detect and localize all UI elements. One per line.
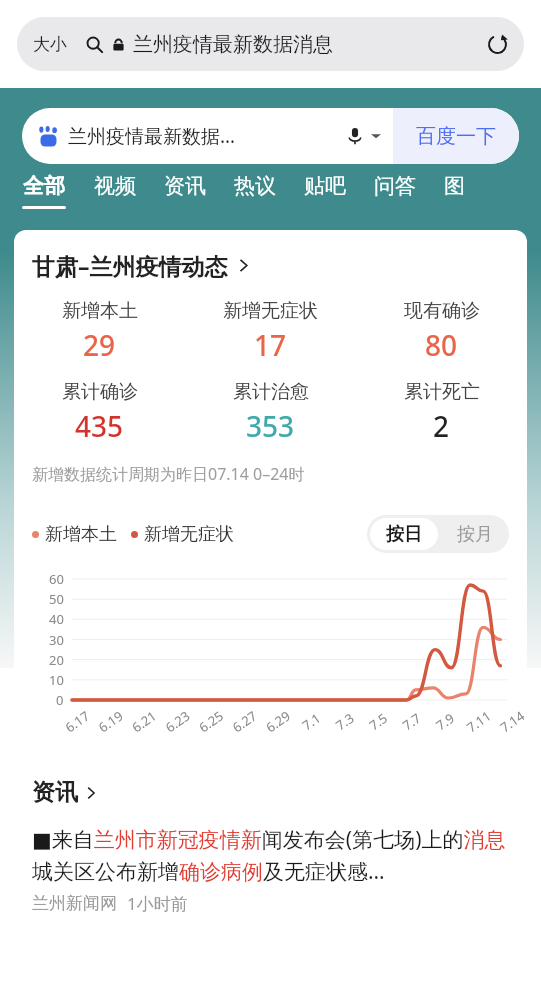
other: Secure (111, 37, 126, 52)
staticText: 甘肃–兰州疫情动态 (32, 250, 228, 281)
button[interactable]: 现有确诊 (356, 299, 527, 364)
button[interactable]: 资讯 (150, 164, 220, 220)
button[interactable]: 累计死亡 (356, 380, 527, 445)
staticText: 累计确诊 (62, 380, 138, 404)
staticText: 80 (425, 326, 458, 364)
button[interactable]: 贴吧 (290, 164, 360, 220)
button[interactable]: 按月 (441, 515, 509, 553)
staticText: 贴吧 (304, 173, 346, 199)
button[interactable]: 新增无症状 (185, 299, 356, 364)
staticText: 兰州疫情最新数据消息 (133, 32, 333, 57)
staticText: 新增数据统计周期为昨日07.14 0–24时 (32, 463, 305, 485)
button[interactable]: 累计确诊 (14, 380, 185, 445)
staticText: 新增本土 (62, 299, 138, 323)
button[interactable]: 百度一下 (393, 108, 519, 164)
staticText: 现有确诊 (404, 299, 480, 323)
staticText: 17 (254, 326, 287, 364)
staticText: 2 (433, 407, 450, 445)
staticText: 累计治愈 (233, 380, 309, 404)
other: Reload (487, 34, 508, 55)
staticText: ■来自兰州市新冠疫情新闻发布会(第七场)上的消息 城关区公布新增确诊病例及无症状… (32, 825, 509, 886)
button[interactable]: 视频 (80, 164, 150, 220)
staticText: 百度一下 (416, 124, 496, 149)
staticText: 435 (75, 407, 124, 445)
other: Voice search (346, 127, 364, 145)
staticText: 按月 (457, 523, 493, 546)
button[interactable]: 累计治愈 (185, 380, 356, 445)
other: Search (86, 36, 103, 53)
staticText: 图 (444, 173, 465, 199)
button[interactable]: 兰州疫情最新数据… (22, 108, 519, 164)
staticText: 新增无症状 (144, 523, 234, 546)
button[interactable]: 热议 (220, 164, 290, 220)
staticText: 新增本土 (45, 523, 117, 546)
button[interactable]: 按日 (370, 518, 438, 550)
button[interactable]: 全部 (22, 164, 66, 220)
staticText: 353 (246, 407, 295, 445)
staticText: 资讯 (32, 778, 78, 807)
staticText: 兰州新闻网 (32, 893, 117, 914)
staticText: 新增无症状 (223, 299, 318, 323)
staticText: 29 (83, 326, 116, 364)
staticText: 兰州疫情最新数据… (68, 123, 236, 149)
staticText: 热议 (234, 173, 276, 199)
staticText: 累计死亡 (404, 380, 480, 404)
button[interactable]: 新增本土 (14, 299, 185, 364)
button[interactable]: 问答 (360, 164, 430, 220)
button[interactable]: 大小 (17, 17, 524, 71)
button[interactable]: ■来自兰州市新冠疫情新闻发布会(第七场)上的消息 城关区公布新增确诊病例及无症状… (14, 825, 527, 915)
other: More (371, 131, 381, 141)
staticText: 按日 (386, 523, 422, 546)
staticText: 资讯 (164, 173, 206, 199)
button[interactable]: 图 (430, 164, 479, 220)
staticText: 全部 (23, 173, 65, 199)
staticText: 视频 (94, 173, 136, 199)
staticText: 大小 (33, 34, 67, 55)
staticText: 问答 (374, 173, 416, 199)
staticText: 1小时前 (127, 892, 188, 915)
button[interactable]: 甘肃–兰州疫情动态 (32, 250, 251, 281)
button[interactable]: 资讯 (32, 778, 98, 807)
